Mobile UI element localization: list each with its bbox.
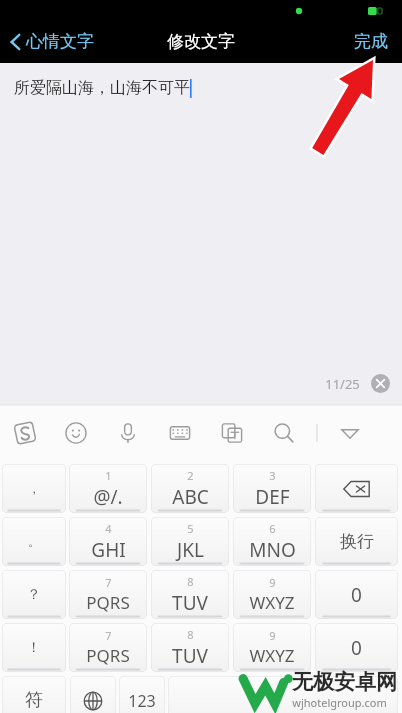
button[interactable]: 0	[315, 570, 398, 619]
staticText: MNO	[249, 537, 296, 563]
button[interactable]: 完成	[340, 25, 402, 58]
staticText: 3	[269, 468, 276, 483]
button[interactable]: Translate	[206, 405, 258, 461]
staticText: 6	[269, 521, 276, 536]
button[interactable]: 123	[119, 676, 165, 713]
staticText: 9	[269, 628, 276, 643]
button[interactable]: 9	[233, 623, 311, 672]
staticText: 修改文字	[167, 31, 235, 52]
button[interactable]: 1	[69, 464, 147, 513]
button[interactable]: Space	[168, 676, 398, 713]
staticText: wjhotelgroup.com	[292, 695, 387, 710]
button[interactable]: 符	[2, 676, 66, 713]
staticText: ？	[27, 586, 41, 604]
button[interactable]: Clear text	[371, 374, 390, 393]
staticText: TUV	[172, 643, 208, 669]
button[interactable]: 9	[233, 570, 311, 619]
button[interactable]: ，	[2, 464, 66, 513]
staticText: WXYZ	[249, 591, 295, 614]
button[interactable]: Search	[258, 405, 310, 461]
staticText: 7	[105, 628, 112, 643]
staticText: 。	[28, 534, 40, 549]
staticText: 4	[105, 521, 112, 536]
button[interactable]: Backspace	[315, 464, 398, 513]
staticText: 心情文字	[26, 31, 94, 52]
button[interactable]: 4	[69, 517, 147, 566]
staticText: ，	[28, 481, 40, 496]
button[interactable]: ！	[2, 623, 66, 672]
button[interactable]: 5	[151, 517, 229, 566]
staticText: 无极安卓网	[292, 669, 397, 695]
staticText: 7	[105, 575, 112, 590]
button[interactable]: Voice input	[102, 405, 154, 461]
button[interactable]: Hide keyboard	[324, 405, 376, 461]
staticText: 123	[128, 690, 156, 712]
staticText: 9	[269, 575, 276, 590]
staticText: PQRS	[86, 644, 130, 667]
staticText: ！	[27, 639, 41, 657]
staticText: 完成	[354, 31, 388, 52]
staticText: 符	[25, 689, 43, 712]
staticText: 5	[187, 521, 194, 536]
button[interactable]: 6	[233, 517, 311, 566]
staticText: DEF	[255, 484, 290, 510]
button[interactable]: Keyboard layout	[154, 405, 206, 461]
button[interactable]: Emoji	[50, 405, 102, 461]
button[interactable]: 换行	[315, 517, 398, 566]
button[interactable]: 7	[69, 623, 147, 672]
staticText: @/.	[93, 484, 123, 510]
button[interactable]: Switch language	[70, 676, 116, 713]
staticText: 所爱隔山海，山海不可平	[14, 78, 190, 98]
staticText: 11/25	[325, 375, 360, 393]
button[interactable]: 。	[2, 517, 66, 566]
button[interactable]: 0	[315, 623, 398, 672]
staticText: 1	[105, 468, 112, 483]
staticText: 换行	[340, 531, 374, 552]
staticText: 0	[351, 582, 362, 608]
button[interactable]: 心情文字	[0, 25, 104, 58]
button[interactable]: 3	[233, 464, 311, 513]
staticText: 0	[351, 635, 362, 661]
button[interactable]: 8	[151, 570, 229, 619]
staticText: 2	[187, 468, 194, 483]
button[interactable]: 8	[151, 623, 229, 672]
staticText: WXYZ	[249, 644, 295, 667]
staticText: 8	[187, 627, 194, 642]
staticText: 8	[187, 574, 194, 589]
button[interactable]: 7	[69, 570, 147, 619]
staticText: GHI	[91, 537, 126, 563]
staticText: ABC	[172, 484, 209, 510]
staticText: TUV	[172, 590, 208, 616]
staticText: JKL	[177, 537, 204, 563]
button[interactable]: Sogou input	[0, 405, 50, 461]
button[interactable]: 2	[151, 464, 229, 513]
button[interactable]: ？	[2, 570, 66, 619]
staticText: PQRS	[86, 591, 130, 614]
